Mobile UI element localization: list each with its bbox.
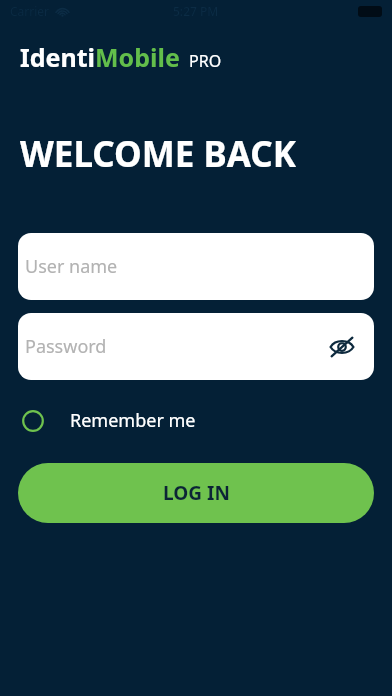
button[interactable]: Show password (322, 327, 362, 367)
button[interactable]: Remember me (18, 402, 200, 439)
staticText: 5:27 PM (173, 3, 219, 19)
button[interactable]: User name (18, 233, 374, 300)
staticText: IdentiMobile (20, 40, 180, 74)
button[interactable]: Password (18, 313, 374, 380)
staticText: Carrier (10, 3, 50, 19)
staticText: User name (25, 254, 118, 279)
staticText: Remember me (70, 408, 196, 433)
staticText: LOG IN (163, 480, 230, 506)
staticText: Password (25, 334, 107, 359)
staticText: WELCOME BACK (20, 130, 296, 178)
staticText: PRO (189, 50, 222, 72)
button[interactable]: LOG IN (18, 463, 374, 523)
